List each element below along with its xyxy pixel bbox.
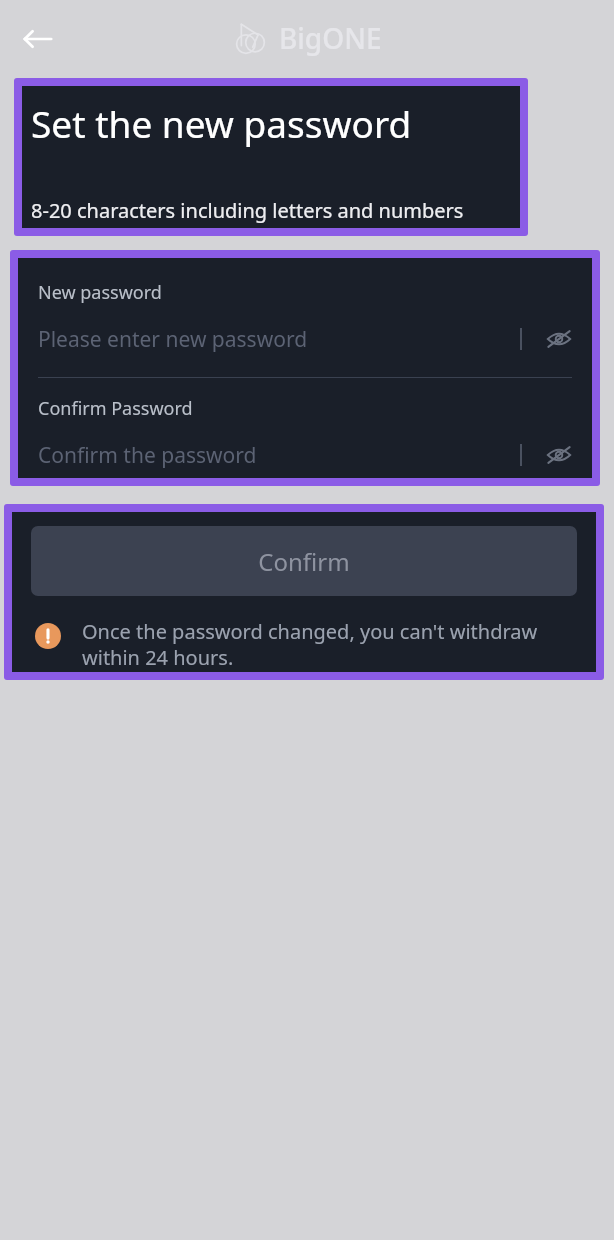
staticText: Set the new password — [31, 98, 412, 148]
staticText: Please enter new password — [38, 325, 520, 354]
staticText: New password — [38, 280, 162, 305]
staticText: Once the password changed, you can't wit… — [82, 618, 576, 671]
staticText: Confirm the password — [38, 441, 520, 470]
staticText: Confirm Password — [38, 396, 193, 421]
button[interactable]: Confirm — [31, 526, 577, 596]
button[interactable]: Show password — [544, 324, 574, 354]
button[interactable]: Please enter new password — [18, 321, 592, 357]
staticText: 8-20 characters including letters and nu… — [31, 197, 464, 224]
button[interactable]: Confirm the password — [18, 437, 592, 473]
button[interactable]: Show password — [544, 440, 574, 470]
staticText: Confirm — [258, 545, 350, 578]
staticText: BigONE — [279, 19, 382, 57]
button[interactable]: Set the new password — [22, 86, 520, 228]
button[interactable]: Back — [14, 15, 62, 63]
